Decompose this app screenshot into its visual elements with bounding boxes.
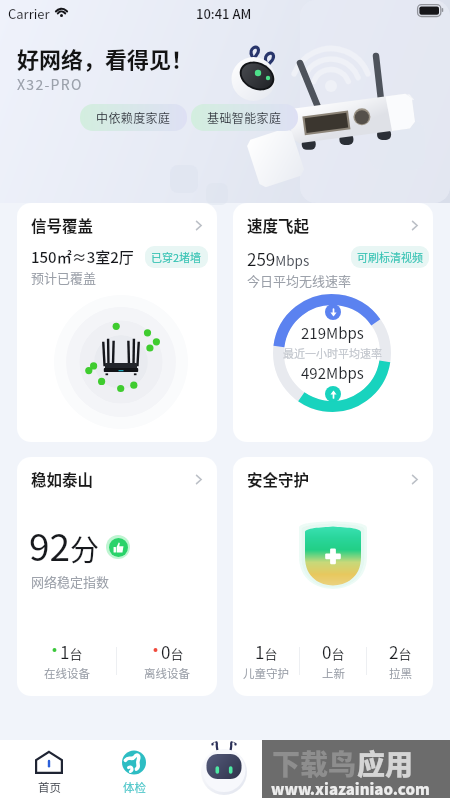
staticText: 在线设备 <box>44 665 90 682</box>
staticText: 安全守护 <box>247 468 310 490</box>
staticText: 92分 <box>29 518 100 572</box>
staticText: 中依赖度家庭 <box>96 109 171 126</box>
staticText: 儿童守护 <box>243 665 289 682</box>
button[interactable]: 速度飞起 <box>233 203 433 442</box>
staticText: www.xiazainiao.com <box>271 778 430 800</box>
button[interactable]: 1台 <box>17 639 116 682</box>
staticText: 492Mbps <box>301 362 364 384</box>
button[interactable]: 中依赖度家庭 <box>80 104 187 131</box>
staticText: 可刷标清视频 <box>357 249 423 265</box>
staticText: 150㎡≈3室2厅 <box>31 246 134 268</box>
staticText: 2台 <box>389 639 412 664</box>
button[interactable]: 安全守护 <box>233 457 433 696</box>
staticText: 离线设备 <box>144 665 190 682</box>
staticText: 体检 <box>123 779 146 796</box>
staticText: 拉黑 <box>389 665 412 682</box>
button[interactable]: 1台 <box>233 639 299 682</box>
staticText: 信号覆盖 <box>31 214 94 236</box>
staticText: 稳如泰山 <box>31 468 94 490</box>
staticText: 10:41 AM <box>196 4 252 23</box>
button[interactable]: 稳如泰山 <box>17 457 217 696</box>
staticText: 0台 <box>161 639 184 664</box>
staticText: 应用 <box>357 743 414 784</box>
staticText: 上新 <box>322 665 345 682</box>
button[interactable]: 2台 <box>367 639 433 682</box>
staticText: Carrier <box>8 4 50 23</box>
staticText: 1台 <box>60 639 83 664</box>
button[interactable]: 信号覆盖 <box>17 203 217 442</box>
staticText: X32-PRO <box>17 74 83 94</box>
button[interactable]: AI assistant <box>198 740 250 800</box>
button[interactable]: 0台 <box>117 639 217 682</box>
staticText: 网络稳定指数 <box>31 572 110 591</box>
staticText: 今日平均无线速率 <box>247 271 352 290</box>
staticText: 速度飞起 <box>247 214 310 236</box>
button[interactable]: 基础智能家庭 <box>191 104 298 131</box>
staticText: 1台 <box>255 639 278 664</box>
staticText: 预计已覆盖 <box>31 268 97 287</box>
button[interactable]: 0台 <box>300 639 366 682</box>
button[interactable]: 首页 <box>19 740 79 800</box>
staticText: 已穿2堵墙 <box>151 249 202 265</box>
staticText: 最近一小时平均速率 <box>283 345 382 361</box>
staticText: 259Mbps <box>247 246 310 271</box>
button[interactable]: 体检 <box>104 740 164 800</box>
staticText: 0台 <box>322 639 345 664</box>
staticText: 下载鸟 <box>272 743 357 784</box>
staticText: 基础智能家庭 <box>207 109 282 126</box>
staticText: 首页 <box>38 779 61 796</box>
staticText: 219Mbps <box>301 322 364 344</box>
staticText: 好网络，看得见！ <box>17 42 194 74</box>
